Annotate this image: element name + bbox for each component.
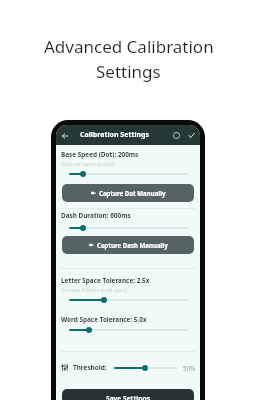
staticText: Base Speed (Dot): 200ms <box>61 150 139 159</box>
staticText: Settings <box>96 60 161 83</box>
button[interactable]: Adjust value <box>69 296 189 304</box>
staticText: Word Space Tolerance: 5.0x <box>61 315 147 324</box>
staticText: (increase if letters break apart) <box>61 287 127 293</box>
button[interactable]: Capture Dash Manually <box>62 236 194 254</box>
staticText: Save Settings <box>106 394 151 400</box>
staticText: Capture Dash Manually <box>97 241 168 249</box>
staticText: Dash Duration: 600ms <box>61 211 131 220</box>
button[interactable]: Save Settings <box>62 389 194 400</box>
staticText: Letter Space Tolerance: 2.5x <box>61 276 150 285</box>
button[interactable]: Capture Dot Manually <box>62 184 194 202</box>
staticText: 50% <box>183 364 196 372</box>
staticText: Calibration Settings <box>80 130 150 140</box>
button[interactable]: Adjust value <box>69 326 189 334</box>
button[interactable]: Done <box>186 130 197 141</box>
button[interactable]: Back <box>59 130 70 141</box>
button[interactable]: Help <box>171 130 182 141</box>
staticText: Capture Dot Manually <box>99 189 166 197</box>
staticText: (Dash will auto-calculate) <box>61 161 115 167</box>
staticText: Threshold: <box>73 363 107 372</box>
button[interactable]: Adjust value <box>69 170 189 178</box>
button[interactable]: Adjust value <box>69 224 189 232</box>
staticText: Advanced Calibration <box>44 35 214 58</box>
button[interactable]: Adjust threshold <box>114 362 177 373</box>
button[interactable]: Calibration Settings <box>80 130 150 140</box>
